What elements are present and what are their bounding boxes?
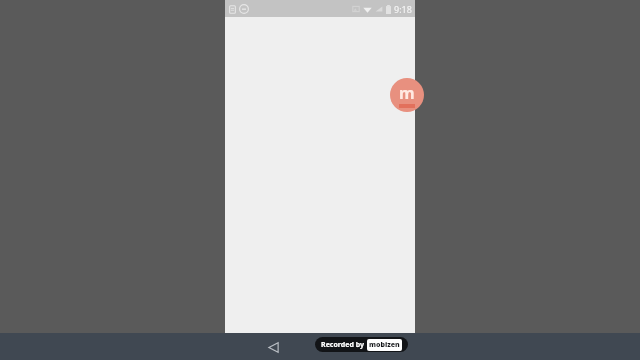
staticText: mobizen — [369, 340, 400, 350]
staticText: m — [399, 82, 415, 104]
staticText: 9:18 — [394, 3, 412, 15]
staticText: Recorded by — [321, 340, 364, 350]
button[interactable]: Mobizen recorder — [390, 78, 424, 112]
button[interactable]: Back — [262, 336, 284, 358]
